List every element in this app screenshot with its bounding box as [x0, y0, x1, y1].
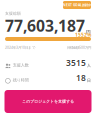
- staticText: 77,603,187: [5, 15, 85, 36]
- staticText: 日: [87, 78, 91, 83]
- button[interactable]: このプロジェクトを支援する: [4, 90, 91, 113]
- staticText: 支援総額: [5, 11, 21, 16]
- staticText: このプロジェクトを支援する: [22, 99, 74, 104]
- button[interactable]: NEXT GOAL挑戦中: [63, 1, 91, 9]
- staticText: 2024年3月10日まで: [5, 45, 36, 50]
- staticText: 残り時間: [13, 78, 29, 83]
- staticText: 18: [76, 72, 86, 83]
- staticText: 目標金額500万円: [67, 45, 91, 50]
- staticText: 支援人数: [13, 63, 29, 68]
- staticText: 円: [86, 29, 91, 35]
- staticText: 人: [87, 63, 91, 68]
- staticText: 3515: [66, 57, 86, 68]
- staticText: 1552%: [75, 31, 91, 38]
- staticText: NEXT GOAL挑戦中: [63, 3, 91, 7]
